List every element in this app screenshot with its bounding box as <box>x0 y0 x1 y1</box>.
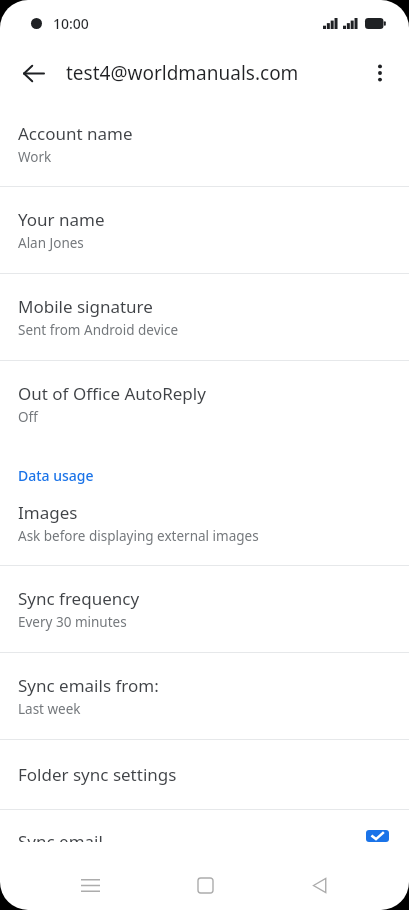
staticText: Alan Jones <box>18 234 84 252</box>
staticText: Ask before displaying external images <box>18 527 259 545</box>
staticText: Out of Office AutoReply <box>18 382 206 405</box>
staticText: Last week <box>18 700 81 718</box>
button[interactable]: Mobile signature <box>0 274 409 360</box>
button[interactable]: Images <box>0 493 409 565</box>
staticText: test4@worldmanuals.com <box>66 60 358 86</box>
staticText: 10:00 <box>53 14 89 33</box>
button[interactable]: Back <box>12 52 54 94</box>
staticText: Account name <box>18 122 133 145</box>
button[interactable]: Sync email <box>0 810 409 859</box>
staticText: Data usage <box>18 466 94 485</box>
button[interactable]: Back <box>295 861 343 909</box>
button[interactable]: Sync frequency <box>0 566 409 652</box>
button[interactable]: Home <box>181 861 229 909</box>
button[interactable]: Sync emails from: <box>0 653 409 739</box>
staticText: Off <box>18 408 38 426</box>
staticText: Mobile signature <box>18 295 153 318</box>
staticText: Sent from Android device <box>18 321 179 339</box>
button[interactable]: Your name <box>0 187 409 273</box>
staticText: Folder sync settings <box>18 763 177 786</box>
button[interactable]: Account name <box>0 104 409 186</box>
button[interactable]: Out of Office AutoReply <box>0 361 409 440</box>
button[interactable]: Folder sync settings <box>0 740 409 809</box>
staticText: Sync email <box>18 830 103 842</box>
staticText: Work <box>18 148 52 166</box>
staticText: Images <box>18 501 78 524</box>
staticText: Sync frequency <box>18 587 140 610</box>
button[interactable]: More options <box>358 51 402 95</box>
button[interactable]: Recent apps <box>66 861 114 909</box>
staticText: Every 30 minutes <box>18 613 127 631</box>
staticText: Sync emails from: <box>18 674 159 697</box>
staticText: Your name <box>18 208 105 231</box>
